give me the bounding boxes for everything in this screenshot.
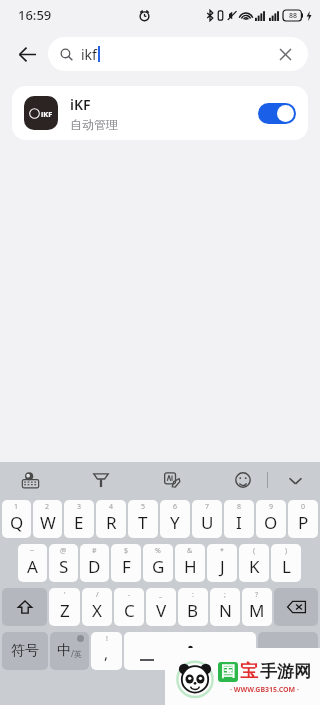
staticText: E: [74, 511, 84, 534]
staticText: ): [285, 546, 288, 556]
button[interactable]: @: [49, 544, 78, 582]
staticText: 0: [301, 502, 306, 512]
button[interactable]: 6: [160, 500, 190, 538]
button[interactable]: 0: [288, 500, 318, 538]
button[interactable]: _: [146, 588, 176, 626]
staticText: D: [88, 555, 101, 578]
staticText: ikf: [81, 45, 97, 64]
staticText: $: [124, 546, 129, 556]
staticText: W: [40, 511, 56, 534]
staticText: 5: [141, 502, 146, 512]
button[interactable]: (: [239, 544, 269, 582]
staticText: %: [155, 546, 161, 556]
button[interactable]: ': [49, 588, 80, 626]
button[interactable]: !: [91, 632, 122, 670]
button[interactable]: *: [207, 544, 237, 582]
staticText: J: [220, 555, 225, 578]
staticText: ': [64, 590, 66, 600]
button[interactable]: Theme: [87, 466, 115, 494]
button[interactable]: ): [271, 544, 301, 582]
button[interactable]: Space / Voice input: [124, 632, 256, 670]
staticText: Q: [10, 511, 24, 534]
button[interactable]: ~: [18, 544, 47, 582]
button[interactable]: 4: [96, 500, 126, 538]
button[interactable]: 2: [33, 500, 62, 538]
button[interactable]: $: [111, 544, 141, 582]
button[interactable]: 自动管理 toggle: [258, 103, 296, 124]
staticText: 16:59: [18, 6, 52, 24]
staticText: ,: [104, 643, 109, 663]
staticText: O: [264, 511, 278, 534]
button[interactable]: Emoji: [229, 466, 257, 494]
staticText: #: [92, 546, 97, 556]
button[interactable]: Input settings: [16, 466, 44, 494]
button[interactable]: 1: [2, 500, 31, 538]
staticText: 宝: [240, 660, 258, 683]
button[interactable]: Shift: [2, 588, 47, 626]
staticText: /: [96, 590, 99, 600]
staticText: X: [92, 599, 102, 622]
button[interactable]: 8: [224, 500, 254, 538]
button[interactable]: Backspace: [274, 588, 318, 626]
staticText: · WWW.GB315.COM ·: [230, 685, 299, 695]
button[interactable]: Back: [6, 33, 48, 75]
staticText: B: [187, 599, 199, 622]
staticText: K: [249, 555, 260, 578]
staticText: I: [236, 511, 242, 534]
staticText: 88: [289, 11, 298, 21]
staticText: 6: [173, 502, 178, 512]
staticText: H: [184, 555, 197, 578]
button[interactable]: ;: [210, 588, 240, 626]
staticText: S: [59, 555, 69, 578]
button[interactable]: Hide keyboard: [278, 463, 312, 497]
button[interactable]: Enter: [258, 632, 318, 670]
staticText: L: [282, 555, 291, 578]
button[interactable]: &: [175, 544, 205, 582]
button[interactable]: 符号: [2, 632, 48, 670]
staticText: C: [124, 599, 135, 622]
button[interactable]: %: [143, 544, 173, 582]
staticText: 自动管理: [70, 117, 118, 132]
button[interactable]: ikf: [48, 37, 308, 71]
staticText: @: [60, 546, 67, 556]
button[interactable]: 9: [256, 500, 286, 538]
staticText: *: [220, 546, 224, 556]
staticText: 手游网: [260, 661, 311, 682]
staticText: 3: [77, 502, 82, 512]
button[interactable]: 7: [192, 500, 222, 538]
button[interactable]: :: [178, 588, 208, 626]
staticText: T: [138, 511, 148, 534]
staticText: ~: [30, 546, 35, 556]
staticText: P: [298, 511, 309, 534]
staticText: 9: [269, 502, 274, 512]
button[interactable]: iKF: [12, 86, 308, 140]
button[interactable]: 5: [128, 500, 158, 538]
staticText: 1: [14, 502, 19, 512]
button[interactable]: #: [80, 544, 109, 582]
staticText: iKF: [41, 109, 53, 119]
button[interactable]: 3: [64, 500, 94, 538]
button[interactable]: 中: [50, 632, 89, 670]
staticText: G: [152, 555, 165, 578]
staticText: 7: [205, 502, 210, 512]
staticText: F: [122, 555, 131, 578]
staticText: 国: [221, 663, 235, 681]
staticText: &: [187, 546, 193, 556]
staticText: !: [106, 634, 108, 644]
staticText: 中: [57, 642, 71, 660]
button[interactable]: Clear: [274, 43, 296, 65]
staticText: 8: [237, 502, 242, 512]
button[interactable]: ?: [242, 588, 272, 626]
button[interactable]: AI edit: [158, 466, 186, 494]
staticText: :: [192, 590, 194, 600]
staticText: M: [249, 599, 265, 622]
button[interactable]: -: [114, 588, 144, 626]
button[interactable]: /: [82, 588, 112, 626]
staticText: ?: [255, 590, 259, 600]
staticText: -: [128, 590, 131, 600]
staticText: Z: [60, 599, 70, 622]
staticText: 2: [45, 502, 50, 512]
staticText: R: [106, 511, 117, 534]
staticText: 符号: [11, 642, 39, 660]
staticText: 4: [109, 502, 114, 512]
